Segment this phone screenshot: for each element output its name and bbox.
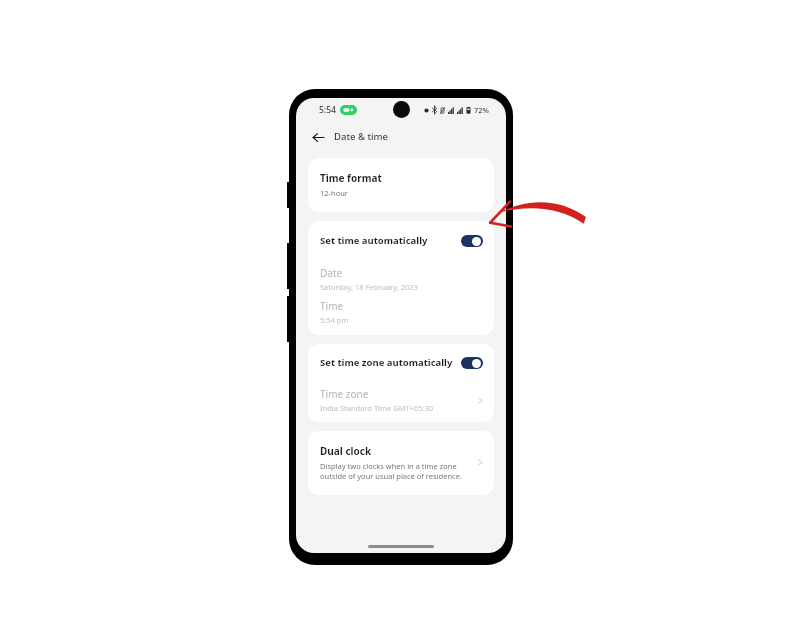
staticText: Time zone bbox=[320, 387, 369, 401]
staticText: Date & time bbox=[334, 130, 389, 143]
staticText: 5:54 bbox=[319, 104, 336, 116]
button[interactable]: Back bbox=[308, 127, 328, 147]
staticText: Saturday, 18 February, 2023 bbox=[320, 282, 418, 292]
button[interactable]: Set time zone automatically bbox=[308, 344, 494, 380]
staticText: 72% bbox=[474, 105, 489, 115]
staticText: Time bbox=[320, 299, 344, 313]
staticText: Set time zone automatically bbox=[320, 356, 461, 369]
button[interactable]: Time bbox=[308, 292, 494, 325]
staticText: 5:54 pm bbox=[320, 315, 349, 325]
staticText: Dual clock bbox=[320, 444, 372, 458]
staticText: Display two clocks when in a time zone o… bbox=[320, 461, 473, 481]
button[interactable]: Dual clock bbox=[308, 431, 494, 495]
staticText: Time format bbox=[320, 171, 382, 185]
staticText: 12-hour bbox=[320, 188, 348, 198]
staticText: Date bbox=[320, 266, 343, 280]
button[interactable]: Date bbox=[308, 259, 494, 292]
button[interactable]: Toggle on bbox=[461, 235, 483, 247]
button[interactable]: Time zone bbox=[308, 380, 494, 413]
button[interactable]: Time format bbox=[308, 158, 494, 212]
staticText: India Standard Time GMT+05:30 bbox=[320, 403, 434, 413]
button[interactable]: Set time automatically bbox=[308, 221, 494, 259]
staticText: Set time automatically bbox=[320, 234, 461, 247]
button[interactable]: Toggle on bbox=[461, 357, 483, 369]
